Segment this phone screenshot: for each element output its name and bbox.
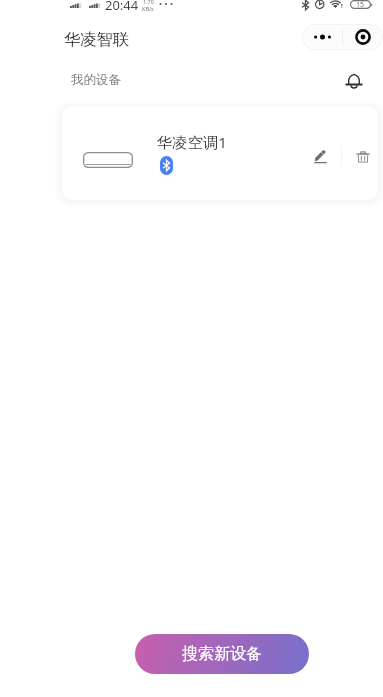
button[interactable]: Close mini program — [343, 24, 383, 50]
staticText: KB/s — [142, 5, 154, 12]
button[interactable]: 搜索新设备 — [135, 634, 309, 674]
button[interactable]: Notifications — [339, 66, 368, 95]
staticText: 我的设备 — [71, 72, 121, 88]
button[interactable]: Edit device name — [304, 140, 336, 172]
button[interactable]: 华凌空调1 — [62, 106, 378, 200]
staticText: 1.70 — [143, 0, 154, 5]
staticText: 华凌空调1 — [157, 132, 227, 153]
staticText: 搜索新设备 — [182, 644, 262, 664]
staticText: 20:44 — [105, 0, 139, 14]
staticText: 15 — [356, 0, 365, 9]
staticText: 华凌智联 — [64, 29, 130, 50]
button[interactable]: More options — [302, 24, 342, 50]
button[interactable]: Delete device — [347, 140, 378, 172]
